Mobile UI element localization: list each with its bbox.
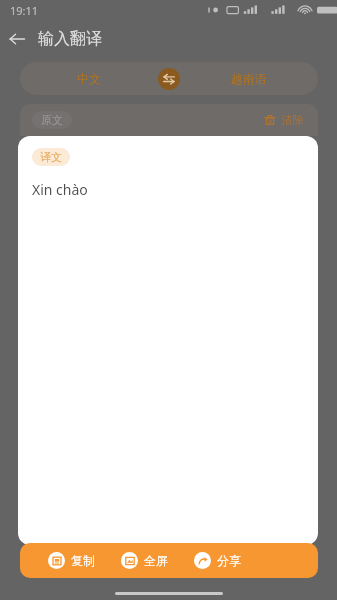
staticText: 原文 <box>41 113 63 127</box>
button[interactable]: 分享 <box>194 548 241 573</box>
staticText: Xin chào <box>32 180 88 199</box>
staticText: 复制 <box>71 553 95 568</box>
staticText: 译文 <box>40 150 62 164</box>
staticText: 清除 <box>282 113 304 127</box>
button[interactable]: 全屏 <box>121 548 168 573</box>
staticText: 越南语 <box>231 71 267 86</box>
button[interactable]: Swap languages <box>158 68 180 90</box>
button[interactable]: 清除 <box>261 109 306 131</box>
button[interactable]: 中文 <box>20 62 158 95</box>
staticText: 中文 <box>77 71 101 86</box>
staticText: 分享 <box>217 553 241 568</box>
button[interactable]: 越南语 <box>180 62 318 95</box>
button[interactable]: Back <box>0 22 34 56</box>
button[interactable]: 复制 <box>48 548 95 573</box>
staticText: 19:11 <box>10 3 39 18</box>
staticText: 全屏 <box>144 553 168 568</box>
staticText: 输入翻译 <box>38 29 102 49</box>
